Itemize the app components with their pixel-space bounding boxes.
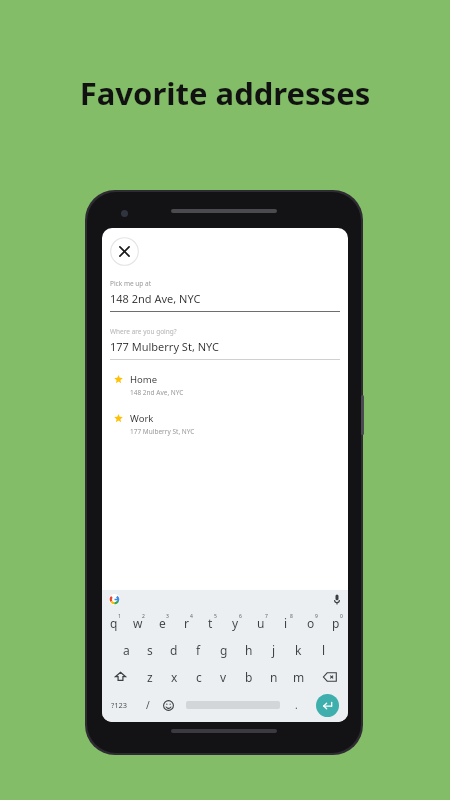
staticText: 0 bbox=[340, 613, 343, 620]
staticText: s bbox=[147, 642, 153, 658]
staticText: 177 Mulberry St, NYC bbox=[130, 427, 195, 436]
button[interactable]: . bbox=[286, 690, 307, 720]
staticText: 8 bbox=[290, 613, 293, 620]
button[interactable]: Emoji bbox=[158, 690, 179, 720]
staticText: / bbox=[146, 698, 150, 712]
staticText: Work bbox=[130, 412, 154, 425]
button[interactable]: n bbox=[261, 663, 286, 690]
staticText: ?123 bbox=[111, 700, 128, 710]
button[interactable]: s bbox=[138, 636, 162, 663]
staticText: p bbox=[332, 615, 340, 631]
button[interactable]: f bbox=[186, 636, 211, 663]
staticText: 3 bbox=[166, 613, 169, 620]
button[interactable]: / bbox=[137, 690, 158, 720]
button[interactable]: u bbox=[248, 609, 273, 636]
staticText: . bbox=[295, 698, 298, 712]
staticText: 4 bbox=[190, 613, 193, 620]
staticText: t bbox=[208, 615, 213, 631]
button[interactable]: o bbox=[298, 609, 323, 636]
staticText: Where are you going? bbox=[110, 327, 177, 336]
button[interactable]: x bbox=[162, 663, 186, 690]
button[interactable]: Shift bbox=[102, 663, 138, 690]
button[interactable]: h bbox=[236, 636, 261, 663]
staticText: o bbox=[307, 615, 315, 631]
button[interactable]: e bbox=[150, 609, 174, 636]
staticText: c bbox=[196, 669, 202, 685]
staticText: a bbox=[123, 642, 130, 658]
staticText: i bbox=[284, 615, 288, 631]
staticText: 177 Mulberry St, NYC bbox=[110, 339, 220, 354]
button[interactable]: k bbox=[286, 636, 311, 663]
button[interactable]: j bbox=[261, 636, 286, 663]
button[interactable]: Google bbox=[109, 594, 120, 605]
staticText: q bbox=[110, 615, 118, 631]
staticText: Home bbox=[130, 373, 158, 386]
button[interactable]: Work bbox=[102, 410, 348, 438]
staticText: w bbox=[133, 615, 143, 631]
staticText: Favorite addresses bbox=[0, 72, 450, 114]
staticText: 148 2nd Ave, NYC bbox=[130, 388, 184, 397]
staticText: f bbox=[196, 642, 201, 658]
staticText: v bbox=[220, 669, 227, 685]
button[interactable]: t bbox=[198, 609, 223, 636]
staticText: r bbox=[184, 615, 189, 631]
staticText: 5 bbox=[214, 613, 217, 620]
button[interactable]: ?123 bbox=[102, 690, 137, 720]
button[interactable]: Close bbox=[110, 237, 139, 266]
staticText: l bbox=[322, 642, 326, 658]
button[interactable]: c bbox=[186, 663, 211, 690]
staticText: 9 bbox=[315, 613, 318, 620]
staticText: k bbox=[295, 642, 302, 658]
staticText: 1 bbox=[118, 613, 121, 620]
button[interactable]: p bbox=[323, 609, 348, 636]
button[interactable]: b bbox=[236, 663, 261, 690]
staticText: b bbox=[245, 669, 253, 685]
staticText: m bbox=[293, 669, 305, 685]
staticText: 2 bbox=[142, 613, 145, 620]
button[interactable]: Space bbox=[179, 690, 286, 720]
button[interactable]: q bbox=[102, 609, 126, 636]
staticText: x bbox=[171, 669, 178, 685]
staticText: e bbox=[159, 615, 166, 631]
button[interactable]: z bbox=[138, 663, 162, 690]
staticText: u bbox=[257, 615, 265, 631]
button[interactable]: d bbox=[162, 636, 186, 663]
button[interactable]: y bbox=[223, 609, 248, 636]
staticText: Pick me up at bbox=[110, 279, 152, 288]
button[interactable]: a bbox=[114, 636, 138, 663]
button[interactable]: Enter bbox=[307, 690, 348, 720]
staticText: h bbox=[245, 642, 253, 658]
staticText: d bbox=[170, 642, 178, 658]
button[interactable]: w bbox=[126, 609, 150, 636]
button[interactable]: Voice input bbox=[334, 594, 340, 605]
button[interactable]: v bbox=[211, 663, 236, 690]
staticText: j bbox=[272, 642, 276, 658]
button[interactable]: Backspace bbox=[311, 663, 348, 690]
staticText: y bbox=[232, 615, 239, 631]
button[interactable]: r bbox=[174, 609, 198, 636]
staticText: 7 bbox=[265, 613, 268, 620]
button[interactable]: Home bbox=[102, 371, 348, 399]
button[interactable]: l bbox=[311, 636, 336, 663]
staticText: 6 bbox=[239, 613, 242, 620]
staticText: g bbox=[220, 642, 228, 658]
button[interactable]: m bbox=[286, 663, 311, 690]
button[interactable]: g bbox=[211, 636, 236, 663]
staticText: 148 2nd Ave, NYC bbox=[110, 291, 201, 306]
staticText: z bbox=[147, 669, 153, 685]
button[interactable]: i bbox=[273, 609, 298, 636]
staticText: n bbox=[270, 669, 278, 685]
